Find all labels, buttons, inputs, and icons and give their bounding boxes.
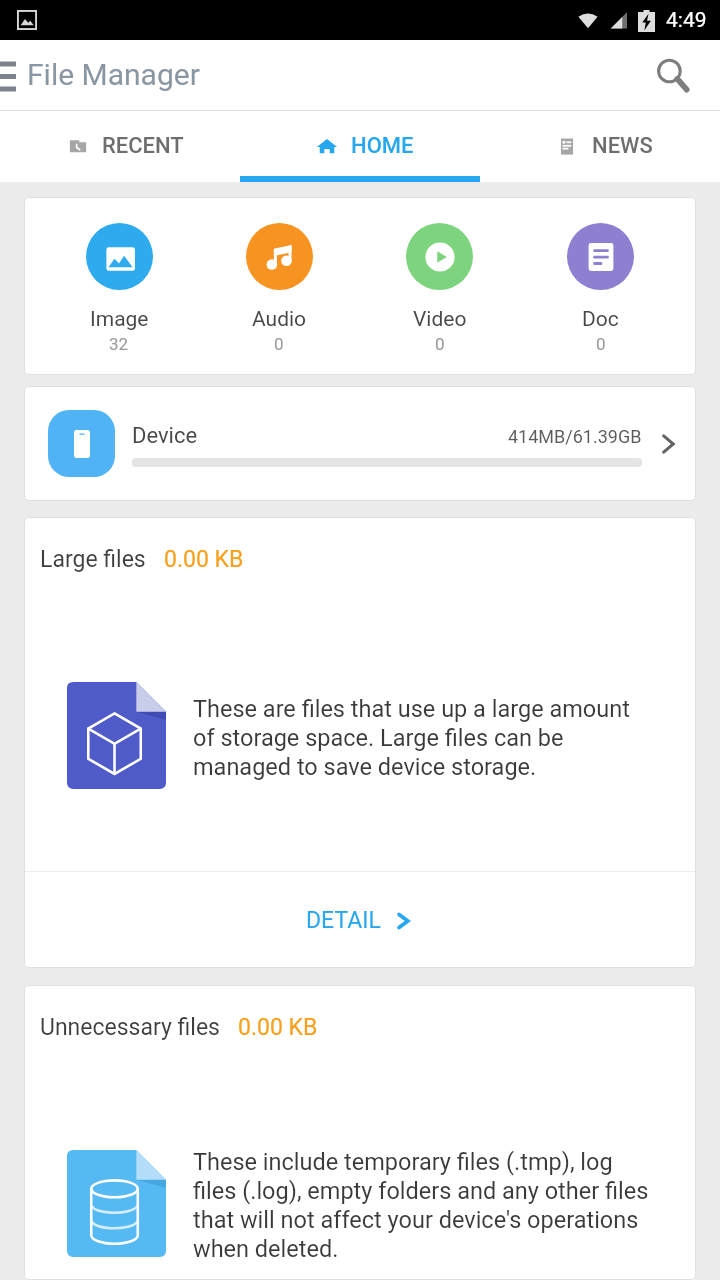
staticText: These include temporary files (.tmp), lo… bbox=[193, 1148, 655, 1262]
button[interactable]: Audio bbox=[199, 223, 359, 354]
staticText: 0 bbox=[596, 334, 606, 354]
staticText: 0 bbox=[274, 334, 284, 354]
staticText: DETAIL bbox=[306, 907, 381, 934]
staticText: Large files bbox=[40, 546, 146, 573]
staticText: 32 bbox=[109, 334, 129, 354]
staticText: 0.00 KB bbox=[164, 546, 244, 573]
button[interactable]: RECENT bbox=[0, 111, 240, 182]
button[interactable]: Doc bbox=[520, 223, 681, 354]
button[interactable]: Device bbox=[24, 386, 696, 501]
staticText: 0.00 KB bbox=[238, 1014, 318, 1041]
staticText: NEWS bbox=[592, 133, 653, 159]
staticText: These are files that use up a large amou… bbox=[193, 695, 655, 780]
staticText: 414MB/61.39GB bbox=[508, 426, 642, 447]
staticText: Device bbox=[132, 423, 198, 449]
staticText: File Manager bbox=[27, 57, 200, 92]
button[interactable]: Video bbox=[359, 223, 520, 354]
staticText: Audio bbox=[252, 307, 307, 332]
staticText: HOME bbox=[351, 133, 414, 159]
button[interactable]: Search bbox=[643, 46, 703, 106]
button[interactable]: HOME bbox=[240, 111, 480, 182]
button[interactable]: NEWS bbox=[480, 111, 720, 182]
button[interactable]: Image bbox=[39, 223, 199, 354]
staticText: Image bbox=[90, 307, 149, 332]
staticText: 4:49 bbox=[666, 8, 707, 33]
staticText: Doc bbox=[582, 307, 619, 332]
staticText: Unnecessary files bbox=[40, 1014, 220, 1041]
button[interactable]: DETAIL bbox=[24, 872, 696, 968]
button[interactable]: Menu bbox=[0, 40, 16, 111]
staticText: RECENT bbox=[102, 133, 184, 159]
staticText: Video bbox=[413, 307, 467, 332]
staticText: 0 bbox=[435, 334, 445, 354]
